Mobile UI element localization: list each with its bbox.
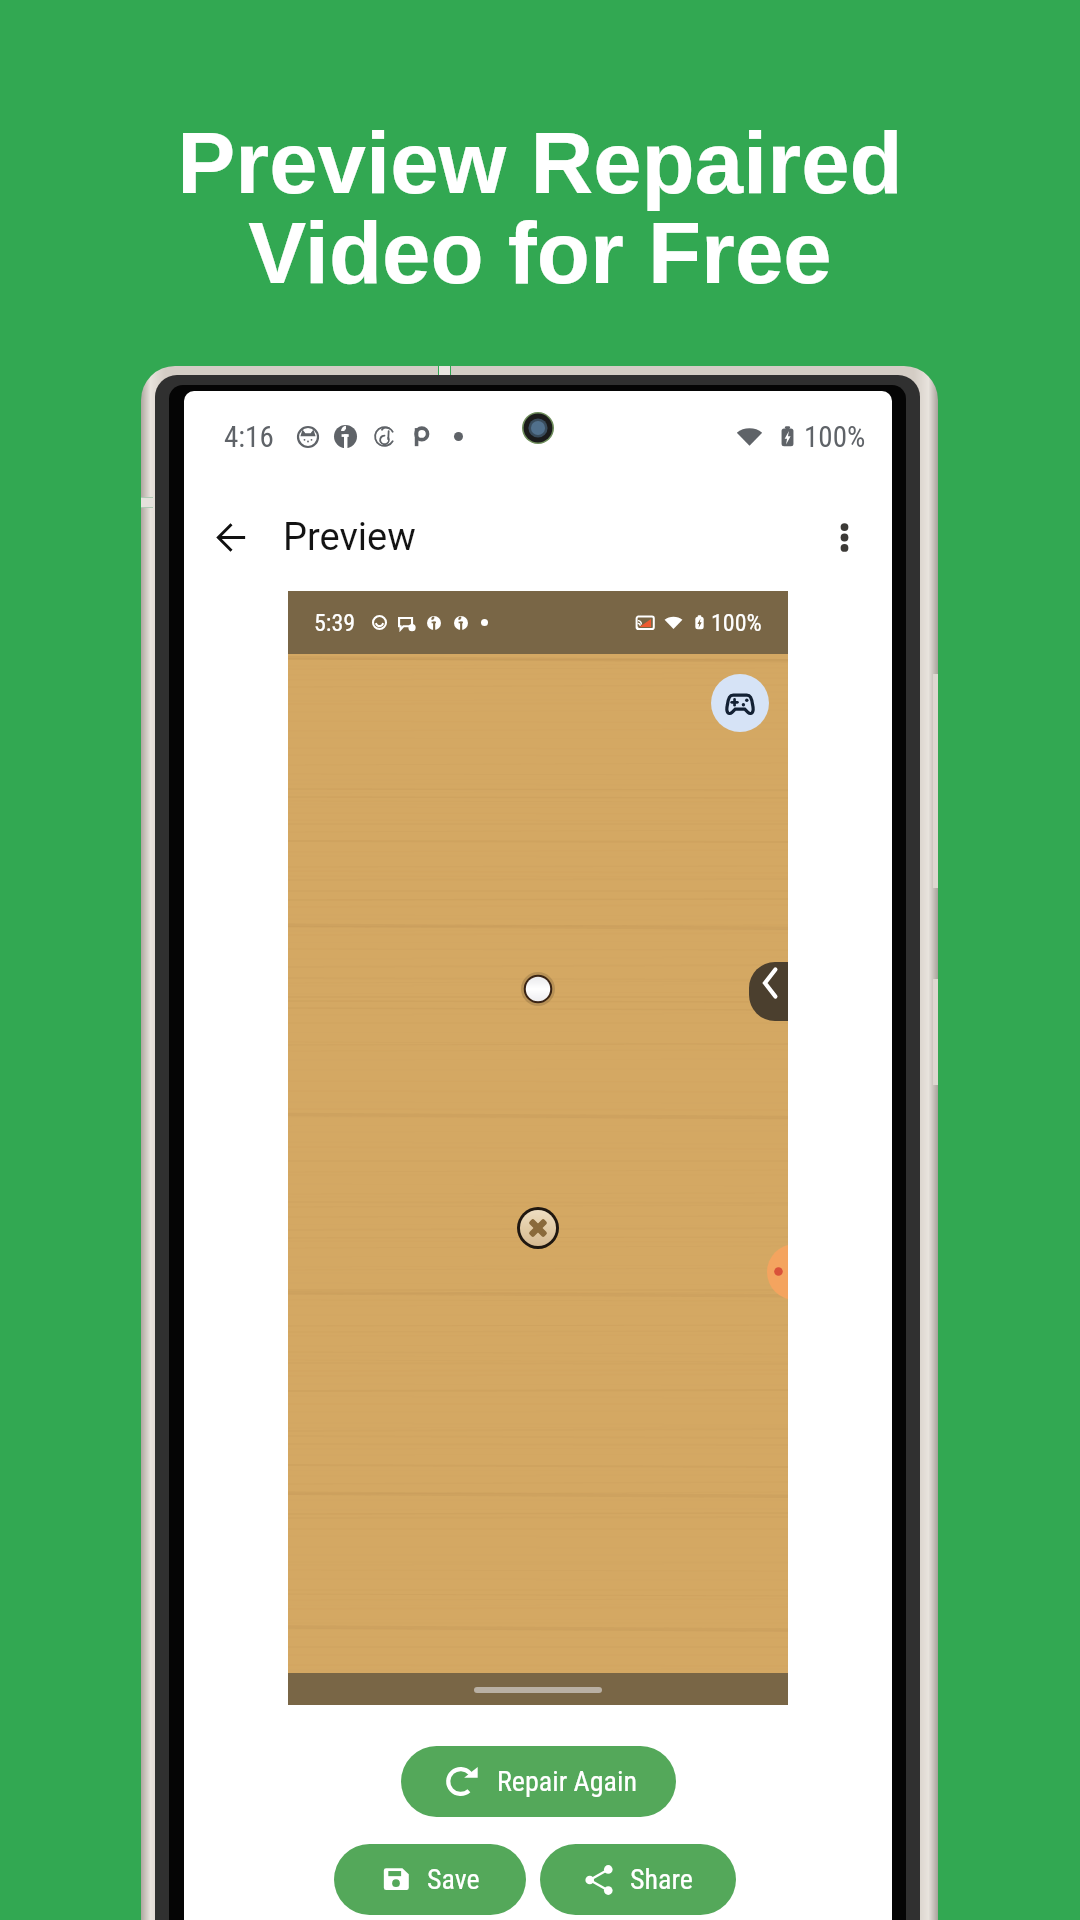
button[interactable]: Repair Again: [401, 1746, 676, 1817]
staticText: Save: [427, 1863, 480, 1896]
staticText: Preview Repaired Video for Free: [177, 114, 903, 302]
button[interactable]: Share: [540, 1844, 736, 1915]
staticText: Repair Again: [497, 1765, 637, 1798]
staticText: Share: [630, 1863, 693, 1896]
staticText: Preview: [283, 515, 416, 560]
staticText: 100%: [804, 420, 866, 454]
button[interactable]: More options: [812, 505, 876, 569]
staticText: 100%: [711, 609, 762, 637]
button[interactable]: Expand: [749, 962, 788, 1021]
staticText: 5:39: [314, 609, 356, 637]
button[interactable]: Back: [200, 506, 262, 568]
button[interactable]: Games: [711, 674, 769, 732]
button[interactable]: Save: [334, 1844, 526, 1915]
staticText: 4:16: [224, 420, 274, 454]
